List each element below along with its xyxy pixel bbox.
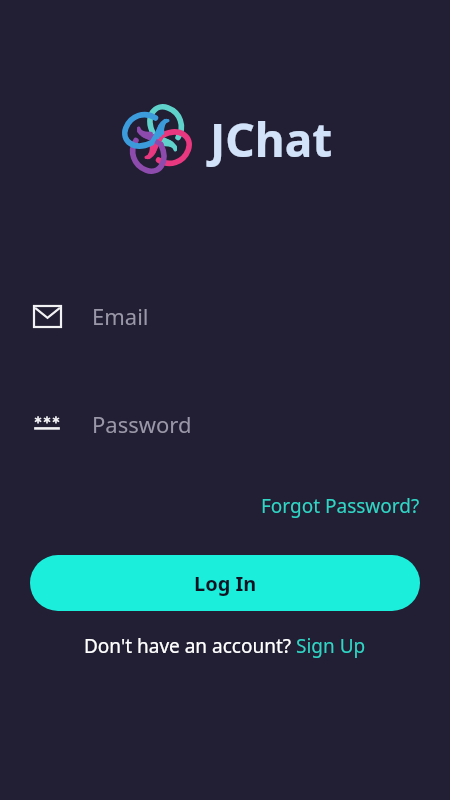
staticText: Don't have an account? bbox=[84, 633, 296, 659]
button[interactable]: Sign Up bbox=[296, 633, 366, 659]
staticText: JChat bbox=[210, 108, 333, 171]
button[interactable]: Log In bbox=[30, 555, 420, 611]
button[interactable]: Email bbox=[0, 293, 450, 339]
button[interactable]: Forgot Password? bbox=[231, 489, 450, 523]
staticText: Log In bbox=[194, 570, 257, 597]
staticText: Sign Up bbox=[296, 633, 366, 659]
staticText: Forgot Password? bbox=[261, 493, 420, 519]
staticText: Password bbox=[92, 409, 192, 439]
other: Email bbox=[30, 299, 64, 333]
other: Password bbox=[30, 407, 64, 441]
staticText: Email bbox=[92, 301, 149, 331]
button[interactable]: Password bbox=[0, 401, 450, 447]
